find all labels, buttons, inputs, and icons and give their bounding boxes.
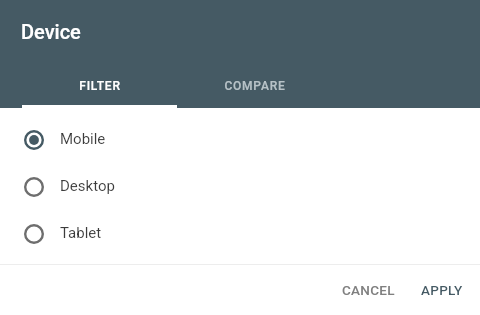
staticText: FILTER — [79, 79, 121, 93]
button[interactable]: Not selected — [0, 163, 480, 210]
staticText: Tablet — [60, 224, 102, 242]
other: Not selected — [24, 177, 44, 197]
button[interactable]: Not selected — [0, 210, 480, 257]
button[interactable]: COMPARE — [177, 64, 332, 108]
staticText: CANCEL — [342, 282, 395, 298]
staticText: Mobile — [60, 130, 106, 148]
staticText: Desktop — [60, 177, 115, 195]
staticText: COMPARE — [224, 79, 286, 93]
staticText: APPLY — [421, 282, 463, 298]
button[interactable]: FILTER — [22, 64, 177, 108]
other: Selected — [24, 130, 44, 150]
other: Not selected — [24, 224, 44, 244]
button[interactable]: APPLY — [413, 274, 471, 306]
button[interactable]: CANCEL — [334, 274, 403, 306]
staticText: Device — [21, 20, 81, 43]
button[interactable]: Selected — [0, 116, 480, 163]
